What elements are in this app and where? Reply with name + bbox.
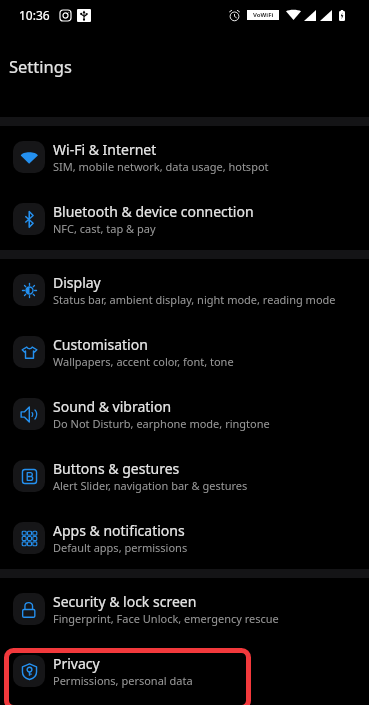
staticText: Security & lock screen	[53, 592, 197, 611]
staticText: SIM, mobile network, data usage, hotspot	[53, 159, 269, 174]
staticText: Customisation	[53, 335, 148, 354]
staticText: Wallpapers, accent color, font, tone	[53, 354, 234, 369]
staticText: Settings	[9, 55, 72, 77]
button[interactable]: Apps & notifications	[0, 507, 369, 569]
staticText: Privacy	[53, 654, 100, 673]
other: Alarm	[228, 10, 241, 21]
button[interactable]: Security & lock screen	[0, 578, 369, 640]
staticText: 10:36	[19, 7, 50, 23]
button[interactable]: Sound & vibration	[0, 383, 369, 445]
staticText: NFC, cast, tap & pay	[53, 221, 156, 236]
staticText: Display	[53, 273, 101, 292]
staticText: Do Not Disturb, earphone mode, ringtone	[53, 416, 270, 431]
staticText: Status bar, ambient display, night mode,…	[53, 292, 336, 307]
button[interactable]: Privacy	[0, 640, 369, 702]
staticText: Fingerprint, Face Unlock, emergency resc…	[53, 611, 279, 626]
staticText: Permissions, personal data	[53, 673, 193, 688]
button[interactable]: Display	[0, 259, 369, 321]
staticText: Default apps, permissions	[53, 540, 188, 555]
button[interactable]: Buttons & gestures	[0, 445, 369, 507]
staticText: Wi-Fi & Internet	[53, 140, 157, 159]
staticText: Alert Slider, navigation bar & gestures	[53, 478, 248, 493]
staticText: Bluetooth & device connection	[53, 202, 254, 221]
button[interactable]: Wi-Fi & Internet	[0, 126, 369, 188]
button[interactable]: Customisation	[0, 321, 369, 383]
staticText: Apps & notifications	[53, 521, 185, 540]
staticText: VoWiFi	[253, 11, 274, 19]
staticText: Buttons & gestures	[53, 459, 180, 478]
staticText: Sound & vibration	[53, 397, 172, 416]
button[interactable]: Bluetooth & device connection	[0, 188, 369, 250]
